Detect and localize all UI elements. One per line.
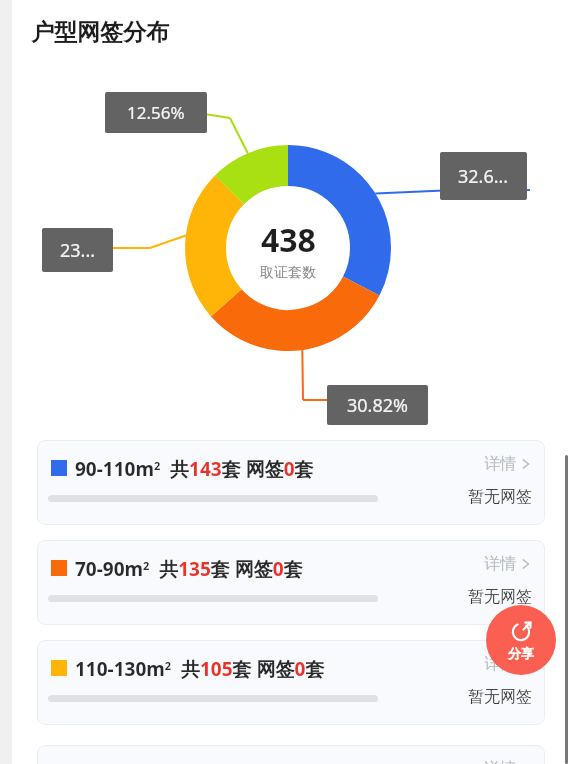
button[interactable]: 详情 [437, 759, 532, 764]
staticText: 23... [60, 238, 96, 263]
button[interactable]: 110-130m2 共105套 网签0套 [37, 640, 545, 725]
staticText: 暂无网签 [468, 587, 532, 607]
staticText: 438 [261, 218, 316, 262]
staticText: 32.6... [458, 164, 509, 189]
button[interactable]: 分享 [486, 605, 556, 675]
staticText: 户型网签分布 [31, 18, 169, 47]
button[interactable]: 70-90m2 共135套 网签0套 [37, 540, 545, 625]
staticText: 30.82% [347, 393, 408, 418]
button[interactable]: 90-110m2 共143套 网签0套 [37, 440, 545, 525]
staticText: 90-110m2 共143套 网签0套 [75, 456, 314, 482]
staticText: 详情 [484, 454, 516, 474]
staticText: 暂无网签 [468, 487, 532, 507]
staticText: 详情 [484, 759, 516, 764]
button[interactable]: 详情 [437, 454, 532, 474]
staticText: 暂无网签 [468, 687, 532, 707]
staticText: 70-90m2 共135套 网签0套 [75, 556, 303, 582]
button[interactable]: 50-70m2 共55套 网签0套 [37, 745, 545, 764]
staticText: 详情 [484, 554, 516, 574]
button[interactable]: 详情 [437, 554, 532, 574]
staticText: 110-130m2 共105套 网签0套 [75, 656, 325, 682]
staticText: 分享 [508, 645, 534, 661]
button[interactable]: 详情 [437, 654, 532, 674]
staticText: 详情 [484, 654, 516, 674]
staticText: 12.56% [127, 101, 185, 124]
staticText: 取证套数 [260, 264, 316, 282]
